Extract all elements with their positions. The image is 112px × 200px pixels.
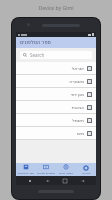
staticText: מים bbox=[76, 131, 84, 136]
button[interactable]: ספר הטלפונים bbox=[16, 163, 36, 176]
staticText: ספר הטלפונים bbox=[18, 171, 34, 175]
other: Open item bbox=[87, 131, 92, 136]
other: Open item bbox=[87, 118, 92, 123]
button[interactable]: חשמל bbox=[16, 114, 96, 127]
button[interactable]: מספרי חירום bbox=[56, 163, 76, 176]
button[interactable]: כבאות bbox=[16, 101, 96, 114]
button[interactable]: Recents bbox=[79, 177, 86, 184]
button[interactable]: Search bbox=[20, 51, 92, 59]
button[interactable]: מגן דוד bbox=[16, 88, 96, 101]
staticText: משטרה bbox=[69, 79, 84, 84]
button[interactable]: Assistant bbox=[26, 177, 33, 184]
button[interactable]: מים bbox=[16, 127, 96, 140]
staticText: Device by Gimi bbox=[38, 5, 74, 12]
other: Open item bbox=[87, 66, 92, 71]
button[interactable]: משטרה bbox=[16, 75, 96, 88]
staticText: Search bbox=[30, 52, 45, 58]
button[interactable]: הגדרות bbox=[76, 163, 96, 176]
staticText: מספרים שמורים bbox=[37, 171, 55, 175]
staticText: הגדרות bbox=[82, 172, 91, 175]
staticText: ישראל bbox=[71, 66, 84, 71]
staticText: מגן דוד bbox=[70, 91, 84, 97]
other: Open item bbox=[87, 92, 92, 97]
staticText: מספרי חירום bbox=[59, 171, 73, 175]
staticText: ספר הטלפונים bbox=[20, 39, 51, 46]
other: Open item bbox=[87, 79, 92, 84]
button[interactable]: ישראל bbox=[16, 62, 96, 75]
button[interactable]: מספרים שמורים bbox=[36, 163, 56, 176]
button[interactable]: Back bbox=[44, 177, 51, 184]
other: Open item bbox=[87, 105, 92, 110]
button[interactable]: ספר הטלפונים bbox=[16, 37, 96, 48]
staticText: כבאות bbox=[71, 105, 84, 110]
staticText: חשמל bbox=[72, 118, 84, 123]
button[interactable]: Home bbox=[61, 177, 68, 184]
